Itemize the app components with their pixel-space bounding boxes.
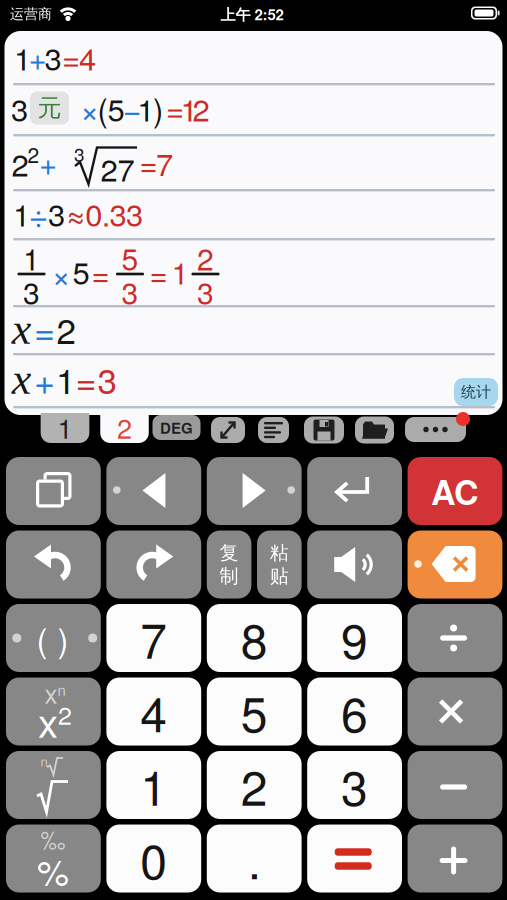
staticText: 3 [48,191,65,235]
button[interactable]: 1 [41,413,89,443]
staticText: 0 [85,191,102,235]
button[interactable] [6,530,101,598]
button[interactable]: 6 [307,677,402,745]
staticText: − [123,86,142,130]
staticText: 1 [13,191,30,235]
staticText: + [28,35,46,79]
staticText: = [149,251,167,294]
button[interactable] [408,530,502,598]
staticText: 3 [11,86,28,130]
button[interactable]: 1 [106,751,201,819]
staticText: 7 [140,604,167,671]
button[interactable]: . [207,824,302,892]
staticText: + [39,140,57,184]
staticText: 3 [197,271,214,312]
staticText: ( [36,615,47,661]
button[interactable]: 4 [106,677,201,745]
staticText: 3 [97,355,116,403]
staticText: = [34,304,55,354]
staticText: ) [57,615,68,661]
button[interactable] [304,416,344,443]
staticText: 2 [197,237,214,278]
button[interactable]: 9 [307,604,402,672]
staticText: = [62,35,80,79]
button[interactable]: AC [408,457,502,525]
staticText: 1 [140,751,167,818]
staticText: 4 [140,678,167,745]
button[interactable]: 5 [207,677,302,745]
staticText: 5 [241,678,268,745]
button[interactable] [307,530,402,598]
staticText: ≈ [65,191,86,235]
button[interactable]: 0 [106,824,201,892]
staticText: ‰ [41,823,65,856]
staticText: × [80,85,99,131]
staticText: 1 [181,86,198,130]
button[interactable] [106,530,201,598]
button[interactable]: 统计 [454,378,498,406]
button[interactable] [106,457,201,525]
staticText: 上午 2:52 [220,3,283,24]
staticText: n [40,752,47,770]
button[interactable]: 2 [100,413,149,443]
button[interactable] [211,417,245,443]
button[interactable] [355,416,394,443]
staticText: × [51,250,70,296]
button[interactable]: DEG [152,415,200,440]
staticText: 1 [56,355,75,403]
button[interactable]: 8 [207,604,302,672]
staticText: = [91,251,109,294]
staticText: 复 [220,541,239,564]
staticText: 粘 [270,541,289,564]
staticText: 7 [156,141,173,184]
staticText: 2 [241,751,268,818]
button[interactable] [258,417,289,443]
staticText: 统计 [461,383,491,401]
staticText: xn [44,674,65,711]
staticText: 27 [100,146,134,190]
staticText: 3 [121,271,138,312]
staticText: 1 [57,408,72,446]
button[interactable]: ‰ [6,824,101,892]
staticText: 0 [140,825,167,892]
staticText: 贴 [270,564,289,588]
staticText: . [248,825,261,892]
staticText: 6 [341,678,368,745]
staticText: AC [431,467,479,515]
button[interactable]: xn [6,677,101,745]
staticText: = [75,354,96,404]
staticText: 3 [23,271,40,312]
button[interactable] [408,604,502,672]
button[interactable]: ( [6,604,101,672]
staticText: . [102,191,111,235]
staticText: DEG [160,417,193,438]
staticText: 5 [107,86,124,130]
staticText: 9 [341,604,368,671]
button[interactable] [207,457,302,525]
button[interactable]: 粘 [257,530,302,598]
staticText: x [12,305,32,353]
button[interactable]: 7 [106,604,201,672]
staticText: 8 [241,604,268,671]
button[interactable]: 2 [207,751,302,819]
staticText: 3 [74,140,85,167]
staticText: + [34,354,55,404]
staticText: x2 [38,693,72,748]
staticText: 3 [109,191,126,235]
button[interactable] [6,457,101,525]
staticText: 1 [137,86,154,130]
button[interactable] [408,751,502,819]
button[interactable]: 复 [207,530,251,598]
button[interactable] [408,677,502,745]
button[interactable] [408,824,502,892]
button[interactable] [307,824,402,892]
button[interactable]: n [6,751,101,819]
button[interactable] [405,417,466,442]
staticText: 1 [171,249,188,293]
staticText: ÷ [28,189,48,237]
button[interactable] [307,457,402,525]
button[interactable]: 3 [307,751,402,819]
staticText: 3 [341,751,368,818]
staticText: 3 [126,191,143,235]
staticText: % [37,845,69,896]
